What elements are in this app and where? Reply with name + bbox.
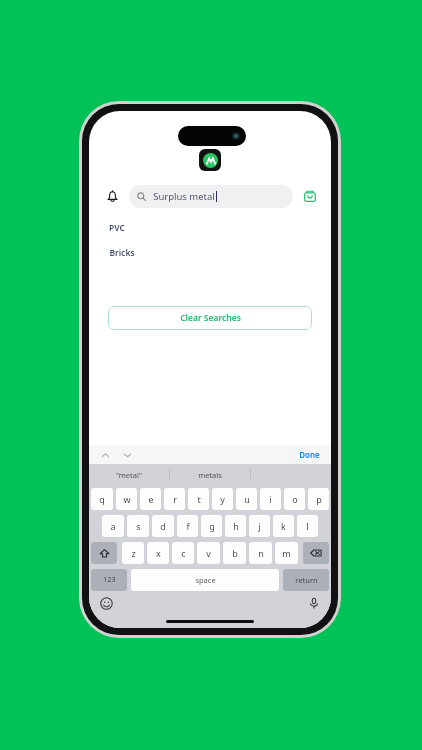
staticText: "metal" <box>116 470 142 480</box>
staticText: d <box>160 520 166 532</box>
staticText: p <box>316 493 322 505</box>
button[interactable]: space <box>131 569 279 591</box>
button[interactable]: p <box>308 488 329 510</box>
button[interactable]: y <box>212 488 233 510</box>
button[interactable]: m <box>275 542 298 564</box>
button[interactable]: Surplus metal <box>129 185 293 208</box>
button[interactable]: h <box>225 515 246 537</box>
button[interactable]: Notifications <box>99 183 125 209</box>
staticText: m <box>282 547 291 559</box>
button[interactable]: 123 <box>91 569 127 591</box>
button[interactable]: Backspace <box>303 542 329 564</box>
button[interactable]: t <box>188 488 209 510</box>
staticText: Bricks <box>109 247 135 259</box>
staticText: s <box>136 520 141 532</box>
staticText: return <box>295 575 318 585</box>
staticText: u <box>244 493 250 505</box>
staticText: b <box>232 547 238 559</box>
button[interactable]: l <box>297 515 318 537</box>
staticText: i <box>269 493 272 505</box>
staticText: space <box>195 575 216 585</box>
staticText: n <box>258 547 264 559</box>
staticText: h <box>233 520 239 532</box>
button[interactable]: s <box>127 515 149 537</box>
staticText: r <box>173 493 177 505</box>
button[interactable]: i <box>260 488 281 510</box>
staticText: metals <box>198 470 222 480</box>
staticText: w <box>123 493 131 505</box>
button[interactable]: w <box>116 488 137 510</box>
button[interactable]: Emoji <box>98 595 114 611</box>
button[interactable]: metals <box>170 464 250 485</box>
staticText: e <box>148 493 154 505</box>
staticText: x <box>156 547 161 559</box>
staticText: j <box>258 520 261 532</box>
button[interactable]: g <box>201 515 222 537</box>
button[interactable]: k <box>273 515 294 537</box>
button[interactable]: Clear Searches <box>108 306 312 330</box>
button[interactable]: z <box>122 542 144 564</box>
button[interactable]: u <box>236 488 257 510</box>
staticText: v <box>206 547 211 559</box>
staticText: f <box>186 520 190 532</box>
button[interactable]: Next <box>120 448 134 462</box>
staticText: PVC <box>109 222 125 234</box>
button[interactable]: v <box>197 542 220 564</box>
staticText: q <box>99 493 105 505</box>
staticText: o <box>292 493 298 505</box>
button[interactable]: return <box>283 569 329 591</box>
staticText: Clear Searches <box>180 312 241 324</box>
button[interactable]: Shift <box>91 542 117 564</box>
staticText: Done <box>299 449 320 460</box>
staticText: t <box>197 493 201 505</box>
button[interactable]: f <box>177 515 198 537</box>
button[interactable]: Cart <box>299 185 321 207</box>
staticText: z <box>131 547 136 559</box>
staticText: Surplus metal <box>153 190 215 203</box>
button[interactable]: j <box>249 515 270 537</box>
staticText: c <box>181 547 186 559</box>
button[interactable]: e <box>140 488 161 510</box>
button[interactable]: b <box>223 542 246 564</box>
button[interactable]: "metal" <box>89 464 169 485</box>
button[interactable]: Dictation <box>306 595 322 611</box>
button[interactable]: x <box>147 542 169 564</box>
button[interactable]: r <box>164 488 185 510</box>
button[interactable]: a <box>102 515 124 537</box>
button[interactable]: c <box>172 542 194 564</box>
staticText: y <box>220 493 225 505</box>
staticText: l <box>306 520 309 532</box>
staticText: k <box>281 520 286 532</box>
button[interactable]: d <box>152 515 174 537</box>
staticText: g <box>209 520 215 532</box>
button[interactable]: Previous <box>98 448 112 462</box>
staticText: 123 <box>103 575 116 585</box>
button[interactable]: o <box>284 488 305 510</box>
button[interactable]: Done <box>297 447 322 462</box>
button[interactable]: q <box>91 488 113 510</box>
button[interactable]: n <box>249 542 272 564</box>
staticText: a <box>110 520 116 532</box>
